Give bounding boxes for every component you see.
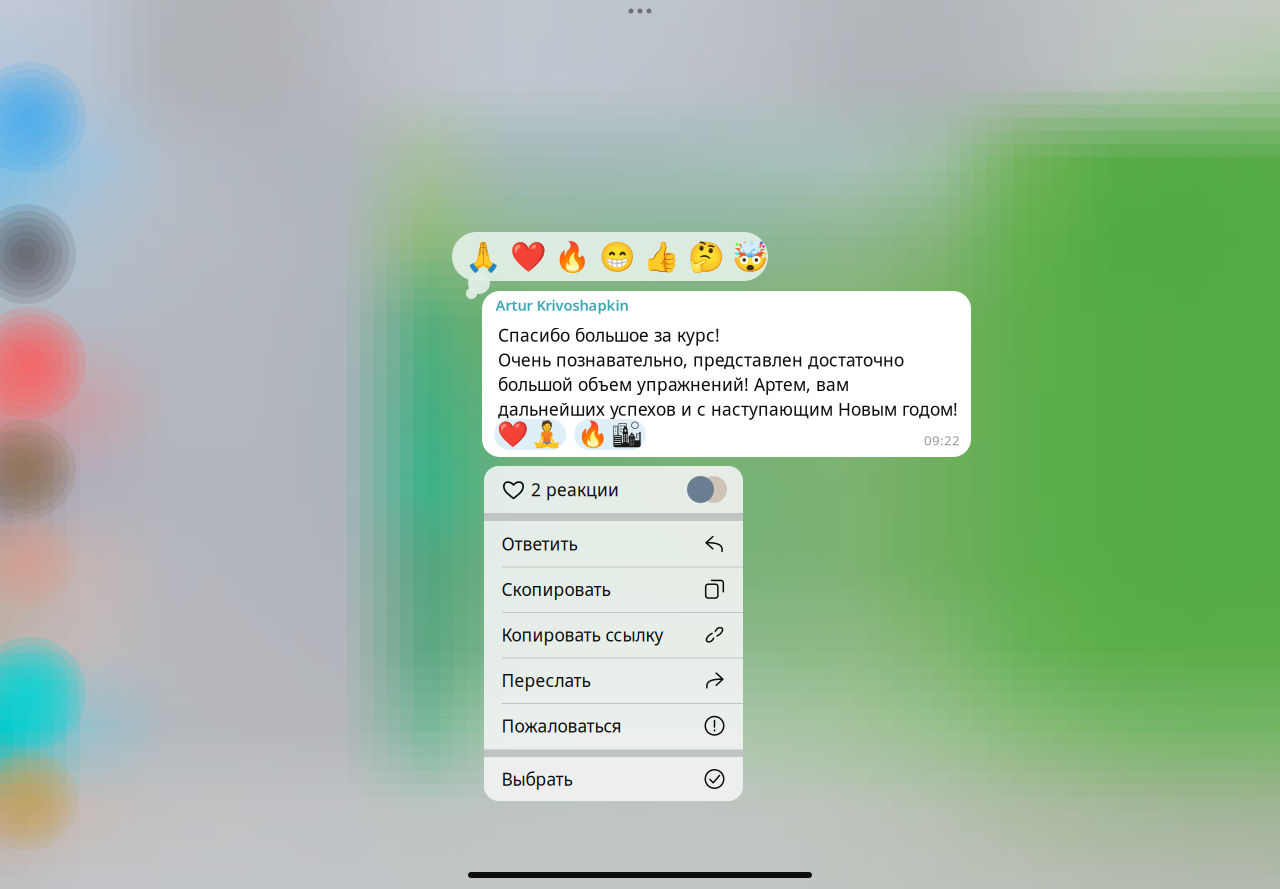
staticText: 🧘 — [531, 420, 563, 449]
staticText: 09:22 — [924, 431, 960, 449]
staticText: 🙏 — [465, 240, 502, 274]
staticText: 🤔 — [687, 240, 724, 274]
staticText: Ответить — [501, 532, 577, 555]
staticText: 😁 — [598, 240, 635, 274]
staticText: 🔥 — [554, 240, 591, 274]
button[interactable]: Ответить — [484, 521, 743, 566]
staticText: 2 реакции — [531, 478, 619, 501]
staticText: Artur Krivoshapkin — [495, 295, 628, 315]
button[interactable]: Переслать — [484, 657, 743, 703]
staticText: 🤯 — [732, 240, 769, 274]
staticText: 👍 — [643, 240, 680, 274]
staticText: Выбрать — [501, 767, 572, 790]
staticText: Спасибо большое за курс! — [498, 324, 720, 347]
staticText: Скопировать — [501, 578, 610, 601]
button[interactable]: Выбрать — [484, 757, 743, 801]
button[interactable]: Копировать ссылку — [484, 612, 743, 657]
staticText: ❤️ — [497, 420, 529, 449]
staticText: дальнейших успехов и с наступающим Новым… — [498, 397, 958, 420]
staticText: 🏙 — [611, 420, 643, 449]
staticText: большой объем упражнений! Артем, вам — [498, 373, 849, 396]
staticText: Очень познавательно, представлен достато… — [498, 348, 904, 371]
staticText: 🔥 — [577, 420, 609, 449]
staticText: Переслать — [501, 669, 590, 692]
staticText: Пожаловаться — [501, 714, 621, 737]
button[interactable]: Пожаловаться — [484, 703, 743, 748]
staticText: ❤️ — [509, 240, 546, 274]
button[interactable]: Скопировать — [484, 566, 743, 612]
staticText: Копировать ссылку — [501, 623, 663, 646]
button[interactable]: 2 реакции — [484, 466, 743, 513]
